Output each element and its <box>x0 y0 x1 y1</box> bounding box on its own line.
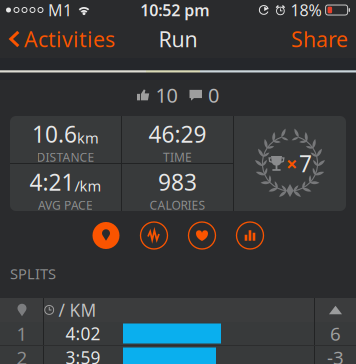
staticText: 4:02 <box>65 322 100 345</box>
staticText: 4:21 <box>29 167 74 197</box>
staticText: M1 <box>48 0 72 21</box>
staticText: 6 <box>330 321 341 346</box>
staticText: 7 <box>299 148 312 178</box>
button[interactable]: Share <box>281 18 356 60</box>
button[interactable]: Analysis <box>140 222 167 249</box>
staticText: AVG PACE <box>38 197 93 213</box>
staticText: 2 <box>16 345 27 364</box>
staticText: DISTANCE <box>36 149 94 165</box>
button[interactable]: Activities <box>0 18 123 60</box>
staticText: 10.6 <box>32 119 77 149</box>
button[interactable]: Splits chart <box>236 222 263 249</box>
button[interactable]: Map <box>92 222 119 249</box>
button[interactable]: Heart rate <box>188 222 215 249</box>
staticText: 0 <box>208 82 219 108</box>
staticText: 10 <box>155 82 177 108</box>
staticText: 1 <box>16 321 27 346</box>
staticText: 3:59 <box>65 346 100 364</box>
staticText: CALORIES <box>149 197 205 213</box>
staticText: 10:52 pm <box>140 0 209 21</box>
staticText: 18% <box>291 0 322 21</box>
staticText: Run <box>158 25 197 53</box>
staticText: / KM <box>58 298 96 321</box>
button[interactable]: 2 <box>0 346 356 364</box>
staticText: -3 <box>327 345 344 364</box>
staticText: Activities <box>24 25 115 53</box>
button[interactable]: Kudos 10 <box>137 78 177 112</box>
staticText: 983 <box>158 167 197 197</box>
staticText: km <box>77 128 99 148</box>
staticText: Share <box>291 25 348 53</box>
staticText: SPLITS <box>10 264 56 283</box>
staticText: × <box>286 150 297 177</box>
button[interactable]: Comments 0 <box>177 78 219 112</box>
staticText: 46:29 <box>148 119 206 149</box>
staticText: /km <box>74 176 101 196</box>
button[interactable]: 1 <box>0 322 356 345</box>
staticText: TIME <box>163 149 192 165</box>
